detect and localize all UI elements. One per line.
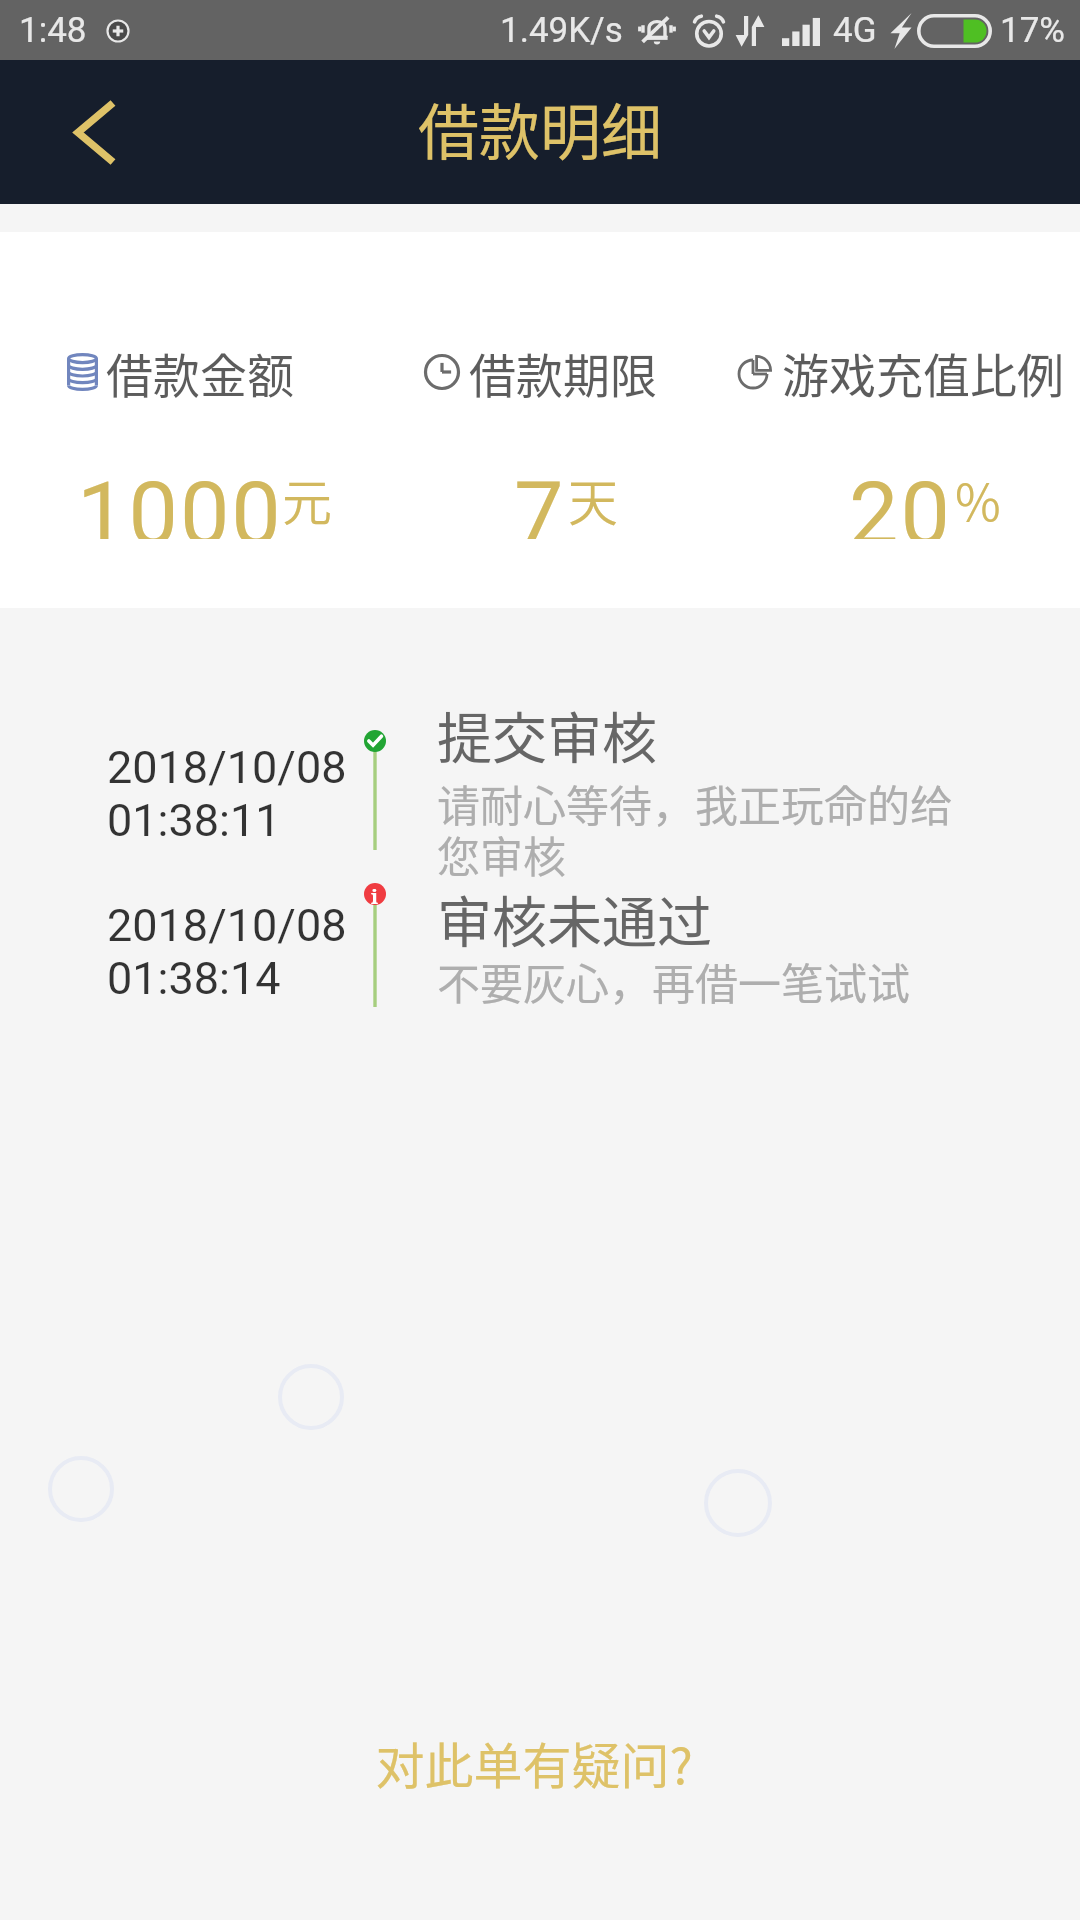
button[interactable]: Back (30, 60, 160, 204)
staticText: 请耐心等待，我正玩命的给您审核 (437, 772, 967, 885)
staticText: 审核未通过 (437, 878, 713, 958)
staticText: 20 (849, 462, 952, 539)
staticText: 借款金额 (106, 338, 294, 406)
staticText: 天 (568, 463, 618, 535)
staticText: 1000 (77, 462, 283, 539)
staticText: 借款明细 (418, 84, 663, 172)
button[interactable]: 对此单有疑问? (375, 1727, 693, 1798)
staticText: 不要灰心，再借一笔试试 (437, 950, 967, 1012)
staticText: 2018/10/08 (107, 899, 347, 952)
staticText: 01:38:11 (107, 794, 281, 847)
staticText: 7 (514, 462, 566, 539)
staticText: 17% (1000, 10, 1065, 51)
staticText: % (955, 463, 1001, 535)
staticText: 借款期限 (469, 338, 657, 406)
staticText: 4G (833, 10, 877, 51)
button[interactable] (0, 874, 1080, 1024)
staticText: 1:48 (19, 10, 87, 51)
button[interactable] (0, 684, 1080, 874)
staticText: 对此单有疑问? (375, 1727, 693, 1798)
staticText: 2018/10/08 (107, 741, 347, 794)
staticText: i (371, 883, 379, 905)
staticText: 01:38:14 (107, 952, 281, 1005)
staticText: 游戏充值比例 (782, 338, 1064, 406)
staticText: 提交审核 (437, 694, 658, 774)
staticText: 1.49K/s (500, 10, 623, 51)
staticText: 元 (282, 463, 332, 535)
